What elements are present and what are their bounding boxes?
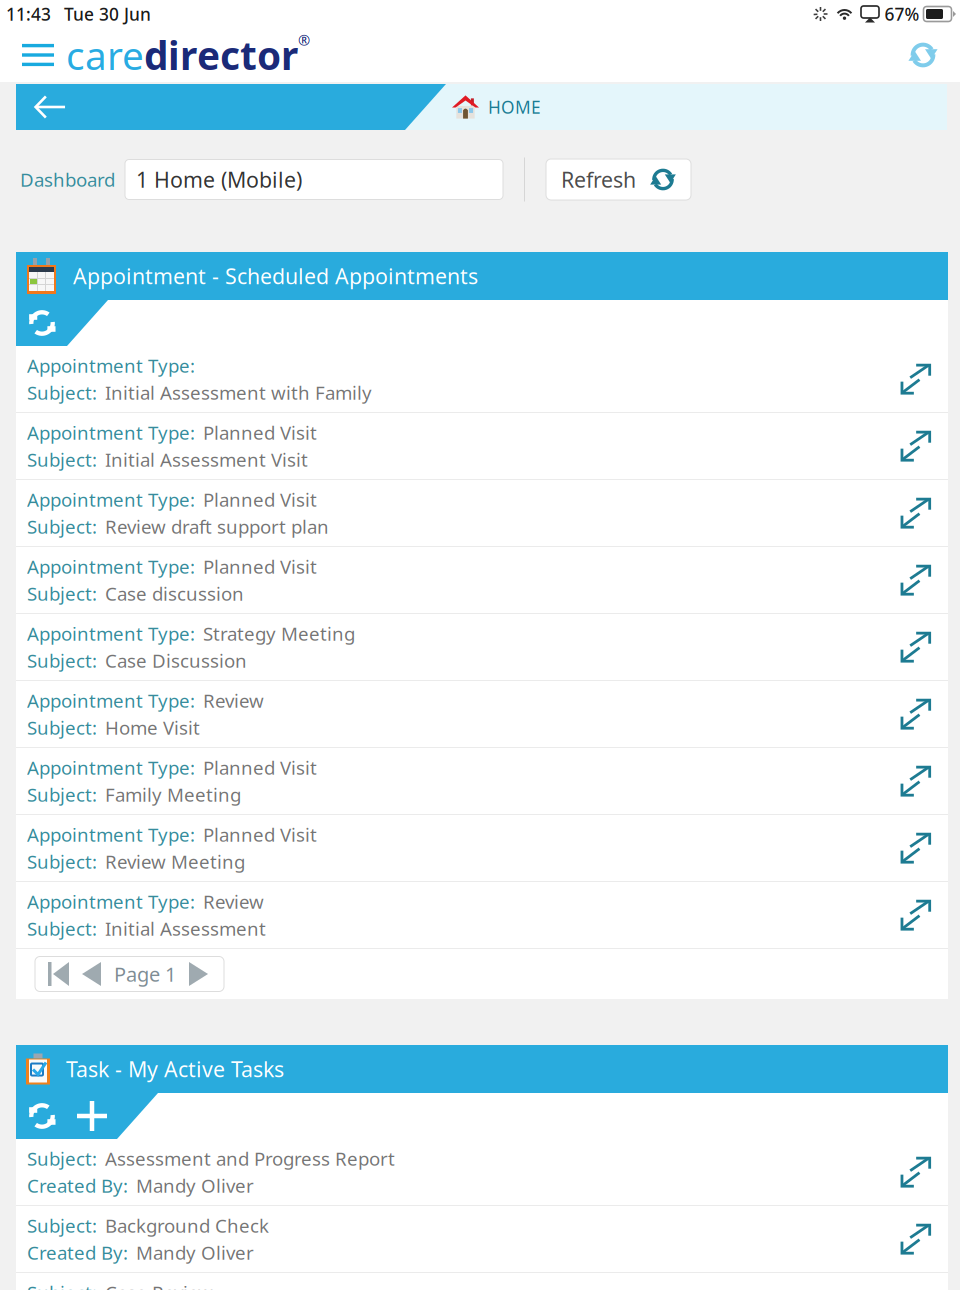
staticText: Refresh <box>561 165 636 194</box>
staticText: Created By: <box>27 1173 128 1198</box>
staticText: Family Meeting <box>105 782 241 807</box>
staticText: Review draft support plan <box>105 514 329 539</box>
staticText: Tue 30 Jun <box>64 2 151 25</box>
button[interactable]: Refresh <box>906 38 940 72</box>
staticText: Subject: <box>27 447 97 472</box>
staticText: Subject: <box>27 581 97 606</box>
button[interactable]: Appointment Type: <box>16 413 948 479</box>
staticText: Subject: <box>27 648 97 673</box>
staticText: Assessment and Progress Report <box>105 1146 395 1171</box>
staticText: Subject: <box>27 380 97 405</box>
staticText: Appointment Type: <box>27 420 195 445</box>
button[interactable]: Refresh <box>16 1100 62 1132</box>
staticText: Planned Visit <box>203 822 317 847</box>
staticText: Appointment - Scheduled Appointments <box>73 262 478 290</box>
button[interactable]: Add <box>75 1101 109 1131</box>
button[interactable]: First page <box>48 962 69 986</box>
staticText: Page 1 <box>114 961 176 987</box>
staticText: Initial Assessment with Family <box>105 380 372 405</box>
staticText: Created By: <box>27 1240 128 1265</box>
staticText: Dashboard <box>20 167 115 192</box>
button[interactable]: Subject: <box>16 1206 948 1272</box>
staticText: Subject: <box>27 514 97 539</box>
staticText: Review Meeting <box>105 849 245 874</box>
staticText: Appointment Type: <box>27 554 195 579</box>
staticText: Planned Visit <box>203 487 317 512</box>
staticText: Appointment Type: <box>27 621 195 646</box>
staticText: Subject: <box>27 1280 97 1290</box>
button[interactable]: Appointment Type: <box>16 547 948 613</box>
button[interactable]: Back <box>26 84 74 130</box>
staticText: 1 Home (Mobile) <box>136 165 302 194</box>
staticText: Subject: <box>27 782 97 807</box>
staticText: Subject: <box>27 1213 97 1238</box>
staticText: Case Discussion <box>105 648 247 673</box>
staticText: Planned Visit <box>203 554 317 579</box>
button[interactable]: Previous page <box>82 962 101 986</box>
staticText: director <box>144 29 298 81</box>
button[interactable]: Subject: <box>16 1273 948 1290</box>
staticText: Appointment Type: <box>27 889 195 914</box>
button[interactable]: Appointment Type: <box>16 480 948 546</box>
staticText: 67% <box>884 2 919 25</box>
staticText: Mandy Oliver <box>136 1173 254 1198</box>
button[interactable]: Appointment Type: <box>16 815 948 881</box>
staticText: Appointment Type: <box>27 755 195 780</box>
button[interactable]: Menu <box>16 31 60 79</box>
button[interactable]: Refresh <box>546 159 691 200</box>
staticText: Initial Assessment Visit <box>105 447 308 472</box>
staticText: Subject: <box>27 916 97 941</box>
button[interactable]: 1 Home (Mobile) <box>125 159 503 199</box>
staticText: Case Review <box>105 1280 213 1290</box>
button[interactable]: Subject: <box>16 1139 948 1205</box>
staticText: Strategy Meeting <box>203 621 355 646</box>
staticText: Appointment Type: <box>27 688 195 713</box>
staticText: Appointment Type: <box>27 822 195 847</box>
staticText: Subject: <box>27 1146 97 1171</box>
staticText: Initial Assessment <box>105 916 266 941</box>
staticText: Review <box>203 688 264 713</box>
staticText: ® <box>298 30 310 50</box>
staticText: 11:43 <box>6 2 51 25</box>
staticText: Appointment Type: <box>27 487 195 512</box>
staticText: care <box>66 29 144 81</box>
staticText: HOME <box>488 95 541 118</box>
button[interactable]: Appointment Type: <box>16 614 948 680</box>
staticText: Subject: <box>27 849 97 874</box>
staticText: Case discussion <box>105 581 244 606</box>
button[interactable]: Appointment Type: <box>16 346 948 412</box>
staticText: Home Visit <box>105 715 200 740</box>
button[interactable]: Next page <box>189 962 208 986</box>
button[interactable]: Appointment Type: <box>16 882 948 948</box>
staticText: Task - My Active Tasks <box>66 1055 284 1083</box>
button[interactable]: Appointment Type: <box>16 681 948 747</box>
staticText: Subject: <box>27 715 97 740</box>
staticText: Review <box>203 889 264 914</box>
staticText: Planned Visit <box>203 420 317 445</box>
staticText: Background Check <box>105 1213 269 1238</box>
staticText: Mandy Oliver <box>136 1240 254 1265</box>
staticText: Appointment Type: <box>27 353 195 378</box>
button[interactable]: Appointment Type: <box>16 748 948 814</box>
staticText: Planned Visit <box>203 755 317 780</box>
button[interactable]: Refresh <box>16 307 62 339</box>
